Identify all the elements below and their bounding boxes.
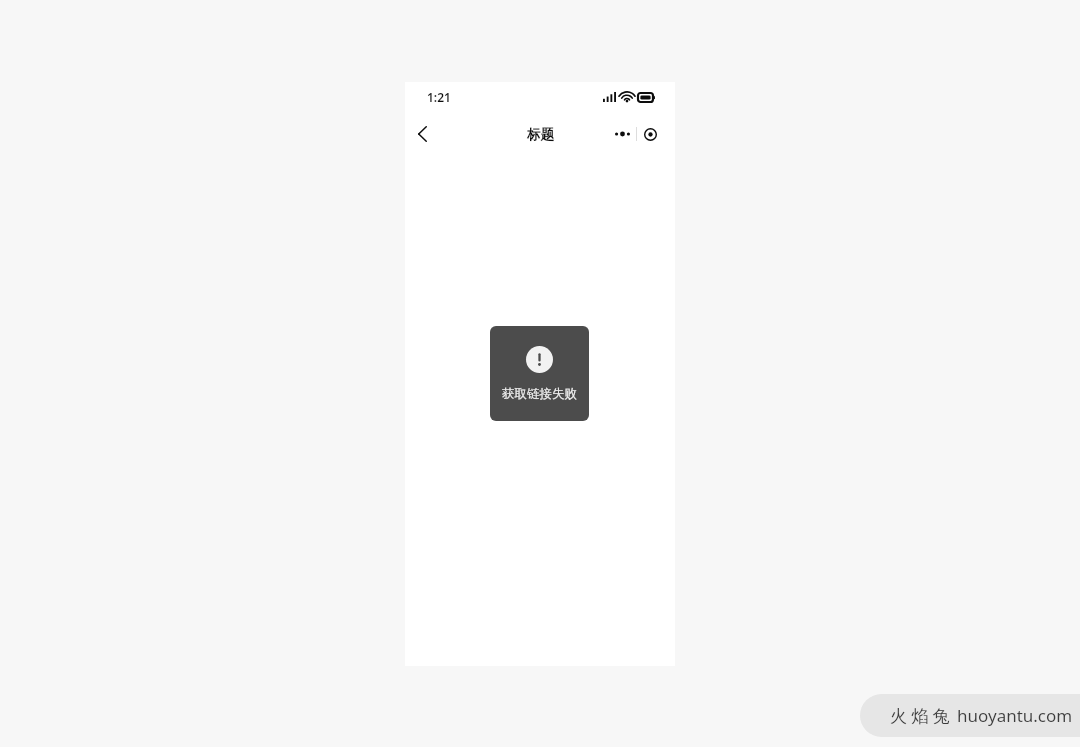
staticText: huoyantu.com — [957, 704, 1073, 727]
staticText: 火 焰 兔 — [890, 704, 950, 727]
button[interactable]: Close — [637, 121, 664, 147]
staticText: 获取链接失败 — [502, 386, 577, 402]
button[interactable]: Back — [405, 112, 439, 156]
staticText: 1:21 — [427, 89, 451, 105]
staticText: 标题 — [527, 126, 554, 143]
button[interactable]: 获取链接失败 — [490, 326, 589, 421]
button[interactable]: More — [609, 121, 636, 147]
